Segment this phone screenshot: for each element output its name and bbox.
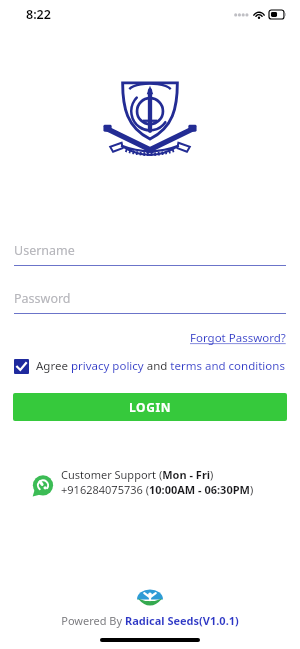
other: WhatsApp customer support <box>32 475 54 497</box>
button[interactable]: Username <box>0 240 300 266</box>
staticText: Forgot Password? <box>190 330 286 346</box>
staticText: LOGIN <box>129 399 172 415</box>
button[interactable]: Forgot Password? <box>190 328 300 348</box>
button[interactable]: WhatsApp customer support <box>32 467 254 497</box>
staticText: Password <box>14 290 71 307</box>
staticText: Powered By Radical Seeds(V1.0.1) <box>61 613 239 628</box>
staticText: Agree privacy policy and terms and condi… <box>36 358 285 374</box>
staticText: 8:22 <box>26 6 51 23</box>
staticText: Customer Support (Mon - Fri) +9162840757… <box>61 467 254 497</box>
button[interactable]: Agree privacy policy and terms and condi… <box>0 355 300 377</box>
button[interactable]: LOGIN <box>13 393 287 421</box>
button[interactable]: Password <box>0 288 300 314</box>
staticText: Username <box>14 242 75 259</box>
